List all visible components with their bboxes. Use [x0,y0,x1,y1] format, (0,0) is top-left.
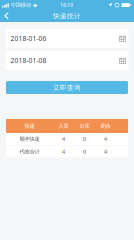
staticText: 出库 [79,123,89,129]
button[interactable]: 2018-01-08 [5,51,128,70]
staticText: 顺丰快递 [19,136,39,142]
button[interactable]: 返回 [0,10,14,22]
staticText: 2018-01-08 [10,56,46,65]
staticText: 剩余 [100,123,110,129]
staticText: 4 [104,148,107,155]
staticText: 4 [104,135,107,143]
staticText: 4 [62,135,65,143]
staticText: 快递统计 [53,12,81,20]
button[interactable]: 立即查询 [6,81,128,94]
staticText: 0 [83,148,86,155]
staticText: 4 [62,148,65,155]
staticText: 中国移动 [11,2,31,8]
staticText: 快递 [24,123,34,129]
button[interactable]: 2018-01-06 [5,29,128,48]
staticText: 入库 [58,123,68,129]
staticText: 0 [83,135,86,143]
staticText: 16:19 [60,1,73,9]
staticText: 2018-01-06 [10,34,46,43]
staticText: 代收合计 [19,148,39,155]
staticText: 立即查询 [53,83,81,92]
